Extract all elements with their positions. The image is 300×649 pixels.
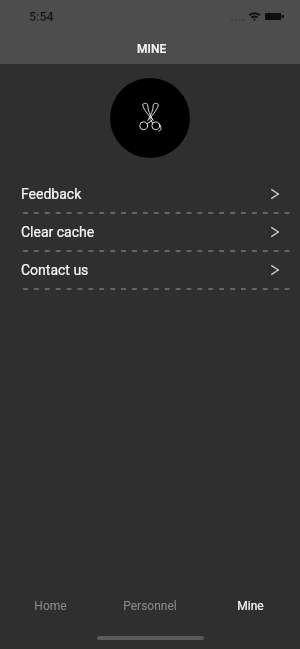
- staticText: Home: [34, 599, 67, 613]
- staticText: Feedback: [21, 186, 82, 202]
- button[interactable]: Personnel: [100, 582, 200, 630]
- button[interactable]: Home: [0, 582, 100, 630]
- staticText: Mine: [237, 599, 264, 613]
- button[interactable]: Contact us: [0, 255, 300, 285]
- staticText: Personnel: [123, 599, 177, 613]
- staticText: MINE: [137, 42, 167, 56]
- button[interactable]: Avatar: [110, 78, 190, 158]
- button[interactable]: Feedback: [0, 179, 300, 209]
- staticText: Clear cache: [21, 224, 95, 240]
- staticText: 5:54: [29, 9, 54, 24]
- staticText: Contact us: [21, 262, 89, 278]
- button[interactable]: Mine: [200, 582, 300, 630]
- button[interactable]: Clear cache: [0, 217, 300, 247]
